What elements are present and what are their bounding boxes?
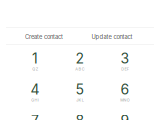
staticText: JKL	[76, 98, 84, 102]
staticText: GHI	[31, 98, 39, 102]
staticText: MNO	[120, 98, 130, 102]
staticText: DEF	[121, 67, 129, 71]
staticText: 8	[75, 112, 84, 120]
button[interactable]: Create contact	[10, 27, 78, 45]
staticText: 4	[30, 81, 39, 98]
staticText: 3	[120, 50, 129, 67]
button[interactable]: 1	[12, 50, 57, 81]
staticText: 2	[75, 50, 84, 67]
staticText: 7	[31, 112, 39, 120]
button[interactable]: 5	[57, 81, 102, 112]
staticText: Update contact	[91, 33, 132, 40]
button[interactable]: 8	[57, 112, 102, 120]
staticText: 5	[75, 81, 84, 98]
staticText: 9	[120, 112, 129, 120]
button[interactable]: 2	[57, 50, 102, 81]
button[interactable]: 9	[102, 112, 147, 120]
button[interactable]: 3	[102, 50, 147, 81]
staticText: ABC	[75, 67, 85, 71]
button[interactable]: 4	[12, 81, 57, 112]
button[interactable]: 7	[12, 112, 57, 120]
staticText: 6	[120, 81, 129, 98]
staticText: QZ	[32, 67, 38, 71]
button[interactable]: 6	[102, 81, 147, 112]
staticText: 1	[32, 50, 38, 67]
button[interactable]: Update contact	[78, 27, 146, 45]
staticText: Create contact	[25, 33, 63, 40]
